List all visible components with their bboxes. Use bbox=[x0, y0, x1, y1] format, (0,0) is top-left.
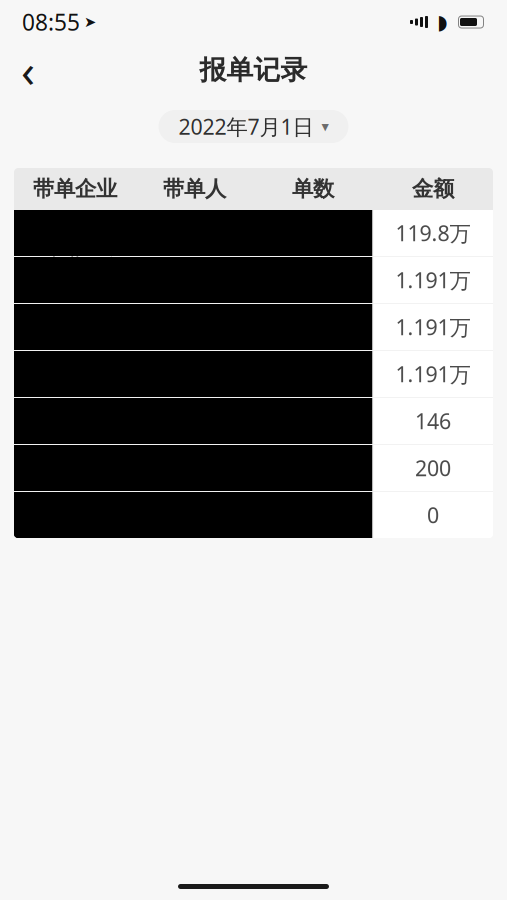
button[interactable]: 2022年7月1日 bbox=[158, 110, 348, 143]
staticText: 金额 bbox=[412, 176, 454, 202]
staticText: 1.191万 bbox=[395, 266, 470, 294]
staticText: 200 bbox=[415, 454, 451, 482]
staticText: ◗ bbox=[437, 11, 448, 33]
staticText: ▾ bbox=[321, 118, 328, 135]
staticText: 0 bbox=[427, 501, 439, 529]
staticText: ‹ bbox=[21, 40, 35, 100]
staticText: 带单企业 bbox=[33, 176, 117, 202]
staticText: 146 bbox=[415, 407, 451, 435]
staticText: 1.191万 bbox=[395, 313, 470, 341]
staticText: ➤ bbox=[84, 14, 96, 30]
staticText: 带单人 bbox=[163, 176, 226, 202]
button[interactable]: Back bbox=[6, 48, 50, 92]
staticText: 1.191万 bbox=[395, 360, 470, 388]
staticText: 08:55 bbox=[22, 7, 80, 37]
staticText: 2022年7月1日 bbox=[178, 112, 313, 141]
staticText: 119.8万 bbox=[395, 219, 470, 247]
staticText: 单数 bbox=[292, 176, 334, 202]
staticText: 河南北云软件 bbox=[22, 254, 127, 306]
staticText: 报单记录 bbox=[199, 54, 307, 86]
